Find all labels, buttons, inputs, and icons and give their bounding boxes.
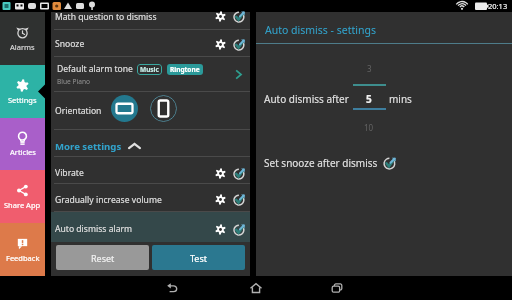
button[interactable]: Recent apps	[297, 276, 377, 300]
staticText: 10	[364, 122, 374, 133]
staticText: Vibrate	[55, 167, 84, 179]
staticText: Math question to dismiss	[55, 11, 157, 23]
staticText: Share App	[4, 200, 41, 210]
staticText: 20:13	[488, 1, 508, 11]
button[interactable]: Settings	[0, 65, 45, 118]
staticText: Orientation	[55, 105, 102, 117]
staticText: Reset	[91, 252, 115, 264]
button[interactable]: Test	[152, 245, 245, 270]
staticText: Alarms	[10, 42, 35, 52]
staticText: Feedback	[6, 253, 40, 263]
button[interactable]: Feedback	[0, 223, 45, 276]
button[interactable]: Home	[216, 276, 296, 300]
staticText: Ringtone	[170, 65, 200, 74]
staticText: Music	[140, 65, 159, 74]
staticText: 3	[367, 63, 372, 74]
button[interactable]: Reset	[56, 245, 149, 270]
button[interactable]: Landscape orientation	[111, 95, 138, 122]
button[interactable]: Vibrate	[51, 157, 250, 183]
button[interactable]: Articles	[0, 118, 45, 170]
staticText: Articles	[10, 147, 36, 157]
staticText: Test	[190, 252, 208, 264]
button[interactable]: Alarms	[0, 12, 45, 65]
button[interactable]: Default alarm tone	[51, 57, 250, 91]
button[interactable]: Back	[132, 276, 212, 300]
button[interactable]: More settings	[51, 130, 250, 156]
staticText: 5	[366, 92, 372, 106]
button[interactable]: Ringtone	[167, 64, 203, 75]
button[interactable]: Gradually increase volume	[51, 184, 250, 211]
staticText: Auto dismiss - settings	[265, 23, 376, 37]
staticText: Auto dismiss alarm	[55, 223, 133, 235]
button[interactable]: Snooze	[51, 30, 250, 56]
staticText: Settings	[8, 95, 37, 105]
button[interactable]: Auto dismiss alarm	[51, 212, 250, 242]
button[interactable]: Set snooze after dismiss	[264, 154, 397, 172]
staticText: Auto dismiss after	[264, 92, 349, 106]
staticText: Snooze	[55, 38, 85, 50]
button[interactable]: Music	[137, 64, 162, 75]
staticText: mins	[389, 92, 412, 106]
button[interactable]: Portrait orientation	[150, 95, 177, 122]
button[interactable]: Share App	[0, 170, 45, 223]
button[interactable]: Math question to dismiss	[51, 12, 250, 29]
staticText: Set snooze after dismiss	[264, 156, 378, 170]
staticText: Gradually increase volume	[55, 194, 162, 206]
staticText: More settings	[55, 140, 122, 153]
staticText: Blue Piano	[57, 77, 90, 86]
staticText: Default alarm tone	[57, 63, 133, 75]
